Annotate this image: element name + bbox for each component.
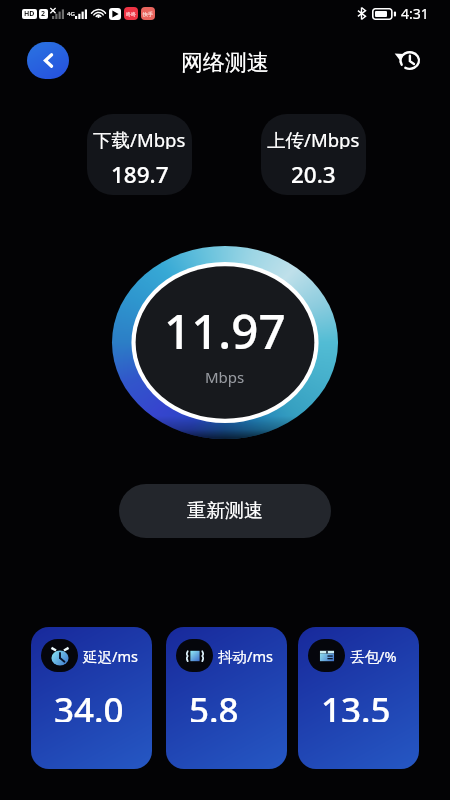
staticText: HD: [24, 9, 35, 19]
button[interactable]: 延迟/ms: [31, 627, 152, 769]
button[interactable]: 抖动/ms: [166, 627, 287, 769]
staticText: 延迟/ms: [83, 646, 138, 666]
button[interactable]: 丢包/%: [298, 627, 419, 769]
staticText: 13.5: [321, 686, 391, 722]
staticText: 34.0: [54, 686, 124, 722]
staticText: Mbps: [205, 367, 245, 387]
staticText: 抖动/ms: [218, 646, 273, 666]
button[interactable]: 重新测速: [119, 484, 331, 538]
staticText: 重新测速: [187, 499, 263, 523]
staticText: 11.97: [164, 298, 286, 354]
staticText: 20.3: [291, 159, 336, 185]
staticText: 4:31: [401, 4, 429, 23]
staticText: 咚咚: [126, 11, 136, 17]
staticText: 上传/Mbps: [267, 127, 360, 149]
staticText: 2: [41, 9, 46, 19]
button[interactable]: Back: [27, 42, 69, 79]
staticText: 4G: [67, 10, 75, 18]
staticText: 网络测速: [181, 49, 269, 77]
button[interactable]: History: [389, 42, 427, 79]
staticText: 189.7: [111, 159, 169, 185]
staticText: 快手: [143, 11, 153, 17]
button[interactable]: 上传/Mbps: [261, 114, 366, 195]
staticText: 丢包/%: [350, 646, 397, 666]
button[interactable]: 下载/Mbps: [87, 114, 192, 195]
staticText: 5.8: [189, 686, 239, 722]
staticText: 下载/Mbps: [93, 127, 186, 149]
